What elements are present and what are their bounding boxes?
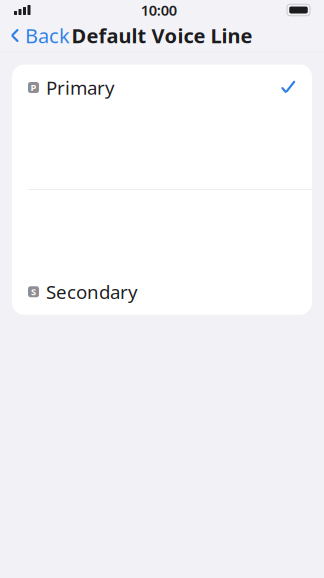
staticText: Secondary <box>46 279 138 304</box>
staticText: Default Voice Line <box>71 22 252 49</box>
staticText: S <box>31 286 36 298</box>
staticText: Primary <box>46 75 115 100</box>
button[interactable]: S <box>12 269 312 315</box>
staticText: Back <box>25 22 70 49</box>
staticText: 10:00 <box>141 0 177 20</box>
button[interactable]: Back <box>0 16 78 55</box>
button[interactable]: P <box>12 64 312 110</box>
staticText: P <box>30 81 36 94</box>
